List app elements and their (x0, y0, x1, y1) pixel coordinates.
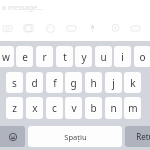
staticText: c (52, 101, 57, 115)
button[interactable]: d (26, 72, 43, 93)
button[interactable]: w (0, 46, 14, 67)
staticText: Spațiu (64, 132, 87, 142)
button[interactable]: h (85, 72, 102, 93)
button[interactable]: b (85, 97, 102, 119)
staticText: y (81, 50, 87, 64)
button[interactable]: Emoji keyboard (0, 126, 25, 147)
staticText: h (90, 76, 97, 90)
button[interactable]: g (65, 72, 82, 93)
staticText: u (100, 50, 107, 64)
staticText: d (31, 76, 38, 90)
button[interactable]: j (105, 72, 122, 93)
staticText: j (112, 76, 115, 90)
button[interactable]: Photos (21, 21, 35, 35)
staticText: t (63, 50, 67, 64)
staticText: r (42, 50, 47, 64)
button[interactable]: m (124, 97, 141, 119)
staticText: m (128, 101, 138, 115)
button[interactable]: k (124, 72, 141, 93)
button[interactable]: f (46, 72, 63, 93)
button[interactable]: x (26, 97, 43, 119)
staticText: z (12, 101, 17, 115)
button[interactable]: t (56, 46, 73, 67)
button[interactable]: n (105, 97, 122, 119)
button[interactable]: r (36, 46, 53, 67)
button[interactable]: v (65, 97, 82, 119)
staticText: w (2, 50, 10, 64)
button[interactable]: Spațiu (28, 126, 122, 147)
button[interactable]: Location (108, 21, 122, 35)
staticText: f (53, 76, 57, 90)
staticText: e (22, 50, 28, 64)
staticText: v (71, 101, 77, 115)
button[interactable]: y (75, 46, 92, 67)
button[interactable]: GIF (64, 21, 78, 35)
staticText: o (139, 50, 146, 64)
staticText: n (110, 101, 117, 115)
staticText: Retur (136, 131, 150, 142)
staticText: b (90, 101, 97, 115)
staticText: s (12, 76, 17, 90)
button[interactable]: Camera (0, 21, 14, 35)
staticText: k (130, 76, 136, 90)
staticText: a message... (2, 3, 43, 13)
button[interactable]: u (95, 46, 112, 67)
button[interactable]: e (16, 46, 33, 67)
button[interactable]: Stickers (43, 21, 57, 35)
staticText: i (121, 50, 124, 64)
staticText: g (70, 76, 77, 90)
button[interactable]: Voice message (85, 21, 99, 35)
button[interactable]: Retur (125, 126, 150, 147)
button[interactable]: i (114, 46, 131, 67)
button[interactable]: o (134, 46, 150, 67)
button[interactable]: z (6, 97, 23, 119)
staticText: x (32, 101, 38, 115)
button[interactable]: More (128, 21, 142, 35)
button[interactable]: a message... (2, 3, 82, 13)
button[interactable]: s (6, 72, 23, 93)
button[interactable]: c (46, 97, 63, 119)
